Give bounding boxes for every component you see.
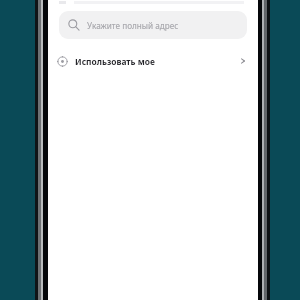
button[interactable]: Use my location [48,51,258,71]
staticText: Укажите полный адрес [87,20,179,31]
other: Search [68,19,80,31]
other: Open [239,57,247,65]
staticText: Использовать мое местоположение [75,56,157,67]
other: Use my location [57,56,68,67]
button[interactable] [48,0,258,4]
button[interactable]: Search [59,11,247,39]
